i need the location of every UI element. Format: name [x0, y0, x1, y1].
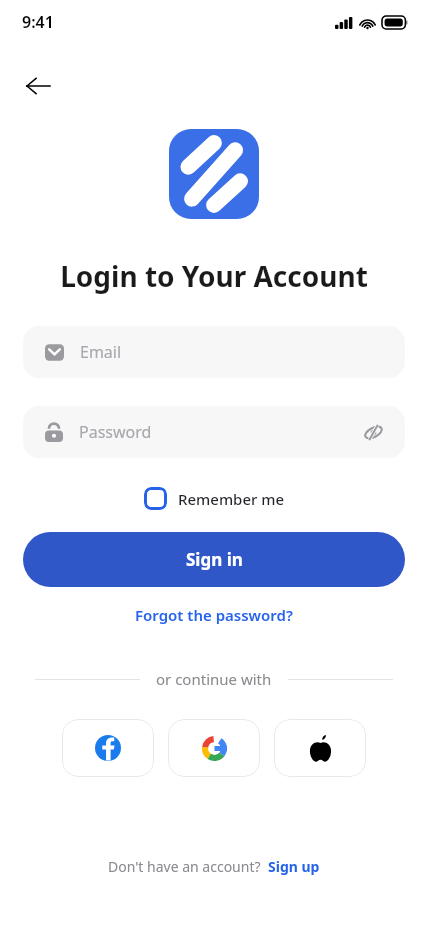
- staticText: Forgot the password?: [135, 605, 293, 625]
- staticText: Sign in: [186, 548, 243, 571]
- staticText: 9:41: [22, 11, 54, 33]
- staticText: Login to Your Account: [0, 257, 428, 295]
- button[interactable]: Remember me: [140, 483, 289, 514]
- staticText: Password: [79, 421, 359, 443]
- button[interactable]: Password: [23, 406, 405, 458]
- button[interactable]: Sign in: [23, 532, 405, 587]
- button[interactable]: Sign up: [268, 857, 320, 876]
- button[interactable]: Sign in with Facebook: [62, 719, 154, 777]
- button[interactable]: Back: [14, 62, 62, 110]
- staticText: Sign up: [268, 857, 320, 876]
- button[interactable]: Sign in with Google: [168, 719, 260, 777]
- staticText: Remember me: [178, 489, 285, 509]
- button[interactable]: Sign in with Apple: [274, 719, 366, 777]
- button[interactable]: Show password: [359, 418, 387, 446]
- staticText: Don't have an account?: [108, 857, 261, 876]
- button[interactable]: Email: [23, 326, 405, 378]
- staticText: or continue with: [156, 669, 272, 689]
- button[interactable]: Forgot the password?: [125, 601, 303, 629]
- staticText: Email: [80, 341, 122, 363]
